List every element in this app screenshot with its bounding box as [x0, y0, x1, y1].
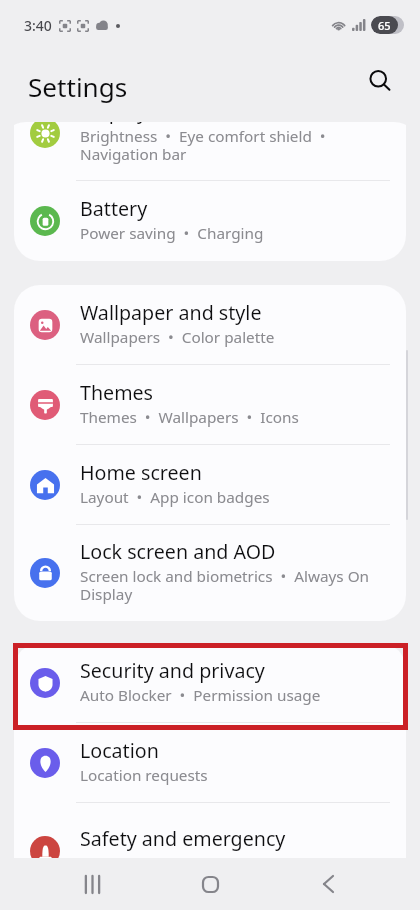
staticText: Screen lock and biometrics • Always On D…: [80, 567, 392, 603]
staticText: Home screen: [80, 461, 202, 485]
staticText: Display: [80, 122, 147, 124]
staticText: Themes: [80, 381, 153, 405]
staticText: Security and privacy: [80, 659, 265, 683]
button[interactable]: Recent apps: [66, 858, 118, 910]
staticText: Safety and emergency: [80, 827, 286, 851]
button[interactable]: Safety and emergency: [14, 803, 406, 858]
button[interactable]: Back: [302, 858, 354, 910]
staticText: 3:40: [24, 16, 52, 35]
staticText: Power saving • Charging: [80, 224, 264, 242]
button[interactable]: Wallpaper and style: [14, 285, 406, 365]
button[interactable]: Display: [14, 122, 406, 181]
staticText: Auto Blocker • Permission usage: [80, 686, 321, 704]
button[interactable]: Battery: [14, 181, 406, 261]
button[interactable]: Security and privacy: [14, 643, 406, 723]
staticText: Location: [80, 739, 159, 763]
staticText: Wallpapers • Color palette: [80, 328, 275, 346]
button[interactable]: Lock screen and AOD: [14, 525, 406, 621]
staticText: Location requests: [80, 766, 208, 784]
staticText: Brightness • Eye comfort shield • Naviga…: [80, 127, 392, 163]
staticText: Battery: [80, 197, 148, 221]
button[interactable]: Themes: [14, 365, 406, 445]
staticText: Layout • App icon badges: [80, 488, 270, 506]
staticText: Wallpaper and style: [80, 301, 262, 325]
staticText: Settings: [28, 69, 128, 105]
button[interactable]: Home: [184, 858, 236, 910]
staticText: 65: [378, 18, 391, 33]
staticText: Lock screen and AOD: [80, 540, 276, 564]
button[interactable]: Location: [14, 723, 406, 803]
staticText: Themes • Wallpapers • Icons: [80, 408, 299, 426]
button[interactable]: Home screen: [14, 445, 406, 525]
button[interactable]: Search: [362, 63, 398, 99]
